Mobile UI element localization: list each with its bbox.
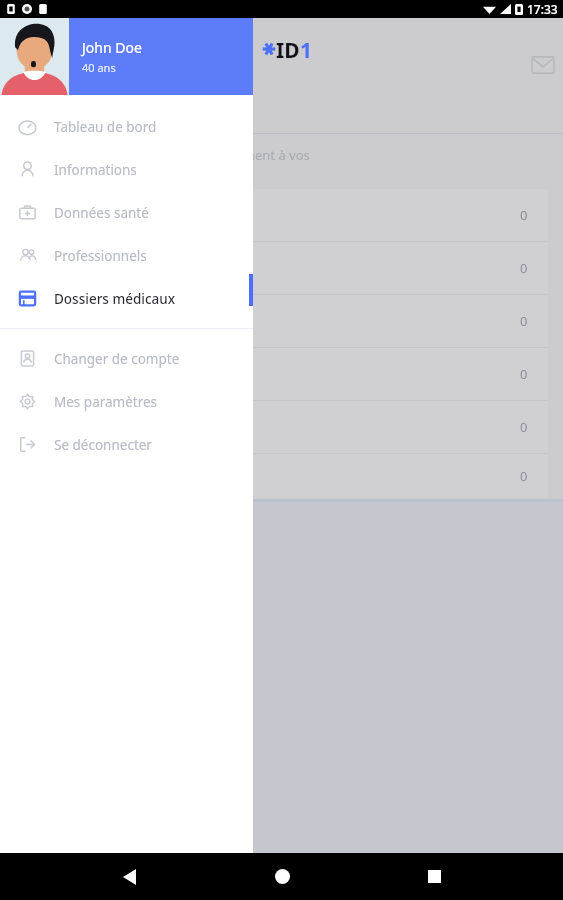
button[interactable]: Données santé — [0, 191, 253, 234]
button[interactable]: Informations — [0, 148, 253, 191]
button[interactable]: Tableau de bord — [0, 105, 253, 148]
button[interactable]: John Doe — [69, 18, 253, 95]
button[interactable]: Profile picture — [0, 18, 69, 95]
staticText: 1 — [300, 36, 313, 62]
staticText: Accédez en quelques clics et à tout mome… — [8, 146, 310, 164]
button[interactable]: ID1 logo — [262, 36, 326, 62]
button[interactable]: Changer de compte — [0, 337, 253, 380]
button[interactable]: Se déconnecter — [0, 423, 253, 466]
button[interactable]: 0 — [6, 454, 548, 498]
staticText: 0 — [520, 259, 528, 277]
button[interactable]: 0 — [6, 348, 548, 400]
button[interactable]: Recent apps — [410, 853, 458, 900]
button[interactable]: 0 — [6, 295, 548, 347]
staticText: 0 — [520, 418, 528, 436]
staticText: 0 — [520, 467, 528, 485]
button[interactable]: Messages — [528, 50, 558, 80]
staticText: Changer de compte — [54, 350, 180, 368]
staticText: Informations — [54, 161, 137, 179]
staticText: 0 — [520, 206, 528, 224]
staticText: 0 — [520, 312, 528, 330]
button[interactable]: Mes paramètres — [0, 380, 253, 423]
staticText: Données santé — [54, 204, 149, 222]
button[interactable]: Home — [258, 853, 306, 900]
staticText: Dossiers médicaux — [54, 290, 176, 308]
staticText: ID — [276, 36, 300, 62]
button[interactable]: Professionnels — [0, 234, 253, 277]
button[interactable]: Dossiers médicaux — [0, 277, 253, 320]
staticText: Tableau de bord — [54, 118, 157, 136]
staticText: Mes paramètres — [54, 393, 158, 411]
button[interactable]: 0 — [6, 401, 548, 453]
button[interactable]: Back — [105, 853, 153, 900]
staticText: Se déconnecter — [54, 436, 152, 454]
staticText: John Doe — [82, 38, 142, 57]
staticText: 17:33 — [527, 1, 558, 17]
staticText: 0 — [520, 365, 528, 383]
staticText: 40 ans — [82, 60, 116, 75]
button[interactable]: 0 — [6, 189, 548, 241]
staticText: Professionnels — [54, 247, 147, 265]
button[interactable]: 0 — [6, 242, 548, 294]
